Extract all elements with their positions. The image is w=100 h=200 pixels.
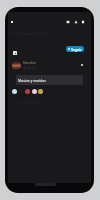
button[interactable]: App 4 bbox=[38, 89, 43, 94]
button[interactable]: Musica y sonidos bbox=[16, 75, 83, 85]
staticText: Nombre bbox=[23, 61, 36, 65]
staticText: Musica y sonidos bbox=[18, 78, 46, 82]
button[interactable]: Seguir bbox=[66, 46, 84, 52]
staticText: @user 2h bbox=[23, 66, 36, 70]
button[interactable]: App 3 bbox=[32, 89, 37, 94]
button[interactable]: Add photo bbox=[13, 51, 17, 55]
button[interactable]: App 0 bbox=[12, 89, 17, 94]
staticText: Seguir bbox=[71, 47, 82, 52]
button[interactable]: App 2 bbox=[25, 89, 30, 94]
